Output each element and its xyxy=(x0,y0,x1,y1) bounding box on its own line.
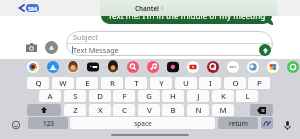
button[interactable]: O xyxy=(224,77,246,89)
button[interactable]: K xyxy=(212,90,234,102)
staticText: O xyxy=(232,78,239,89)
staticText: W xyxy=(59,78,67,89)
staticText: M xyxy=(219,105,227,116)
staticText: N xyxy=(195,105,202,116)
button[interactable]: T xyxy=(125,77,147,89)
button[interactable]: Handwriting xyxy=(261,117,273,129)
button[interactable]: Send xyxy=(259,44,271,56)
button[interactable]: Shift xyxy=(27,104,61,116)
button[interactable]: App 11 xyxy=(227,61,239,73)
button[interactable]: X xyxy=(89,104,111,116)
staticText: Z xyxy=(73,105,78,116)
button[interactable]: space xyxy=(70,117,215,129)
staticText: K xyxy=(221,91,226,102)
button[interactable]: P xyxy=(248,77,270,89)
button[interactable]: Camera xyxy=(24,40,38,54)
staticText: J xyxy=(197,91,200,102)
button[interactable]: G xyxy=(138,90,160,102)
staticText: C xyxy=(122,105,127,116)
button[interactable]: return xyxy=(218,117,258,129)
button[interactable]: U xyxy=(175,77,197,89)
staticText: D xyxy=(97,91,103,102)
staticText: Chantel xyxy=(135,4,159,12)
button[interactable]: J xyxy=(187,90,209,102)
button[interactable]: S xyxy=(64,90,86,102)
button[interactable]: App 7 xyxy=(147,61,159,73)
staticText: U xyxy=(183,78,189,89)
button[interactable]: F xyxy=(113,90,135,102)
staticText: S xyxy=(73,91,78,102)
button[interactable]: App 14 xyxy=(287,61,299,73)
button[interactable]: App 6 xyxy=(127,61,139,73)
staticText: B xyxy=(170,105,176,116)
button[interactable]: App 2 xyxy=(47,61,59,73)
staticText: return xyxy=(229,119,248,127)
staticText: 123 xyxy=(43,119,54,128)
button[interactable]: Q xyxy=(27,77,49,89)
staticText: X xyxy=(98,105,103,116)
button[interactable]: App 8 xyxy=(167,61,179,73)
button[interactable]: H xyxy=(162,90,184,102)
staticText: R xyxy=(110,78,115,89)
staticText: 584 xyxy=(28,5,37,12)
button[interactable]: Dictation xyxy=(281,119,293,131)
button[interactable]: App 4 xyxy=(87,61,99,73)
staticText: Text me! I'm in the middle of my meeting xyxy=(108,10,266,21)
staticText: Text Message xyxy=(73,45,119,55)
button[interactable]: N xyxy=(187,104,209,116)
staticText: Subject xyxy=(73,32,98,42)
button[interactable]: App 5 xyxy=(107,61,119,73)
button[interactable]: D xyxy=(89,90,111,102)
button[interactable]: App 10 xyxy=(207,61,219,73)
button[interactable]: V xyxy=(138,104,160,116)
button[interactable]: Z xyxy=(64,104,86,116)
staticText: G xyxy=(146,91,152,102)
staticText: P xyxy=(257,78,262,89)
button[interactable]: iMessage apps xyxy=(45,41,58,54)
button[interactable]: C xyxy=(113,104,135,116)
staticText: Q xyxy=(35,78,42,89)
button[interactable]: L xyxy=(236,90,258,102)
staticText: F xyxy=(122,91,127,102)
staticText: Y xyxy=(159,78,164,89)
button[interactable]: A xyxy=(39,90,61,102)
staticText: space xyxy=(134,119,152,128)
staticText: T xyxy=(134,78,139,89)
button[interactable]: Back, 584 unread xyxy=(19,2,39,14)
button[interactable]: Y xyxy=(150,77,172,89)
button[interactable]: App 12 xyxy=(247,61,259,73)
staticText: H xyxy=(170,91,176,102)
staticText: A xyxy=(47,91,53,102)
button[interactable]: App 13 xyxy=(267,61,279,73)
button[interactable]: R xyxy=(101,77,123,89)
button[interactable]: Emoji xyxy=(12,121,20,129)
button[interactable]: 123 xyxy=(28,117,68,129)
button[interactable]: Backspace xyxy=(250,104,273,116)
button[interactable]: W xyxy=(52,77,74,89)
staticText: I xyxy=(209,78,212,89)
button[interactable]: E xyxy=(76,77,98,89)
staticText: V xyxy=(147,105,152,116)
button[interactable]: App 1 xyxy=(27,61,39,73)
button[interactable]: B xyxy=(162,104,184,116)
button[interactable]: Subject xyxy=(66,31,273,56)
button[interactable]: App 9 xyxy=(187,61,199,73)
staticText: E xyxy=(85,78,90,89)
button[interactable]: I xyxy=(199,77,221,89)
button[interactable]: App 3 xyxy=(67,61,79,73)
button[interactable]: M xyxy=(212,104,234,116)
button[interactable]: Chantel xyxy=(135,4,163,12)
staticText: L xyxy=(245,91,250,102)
